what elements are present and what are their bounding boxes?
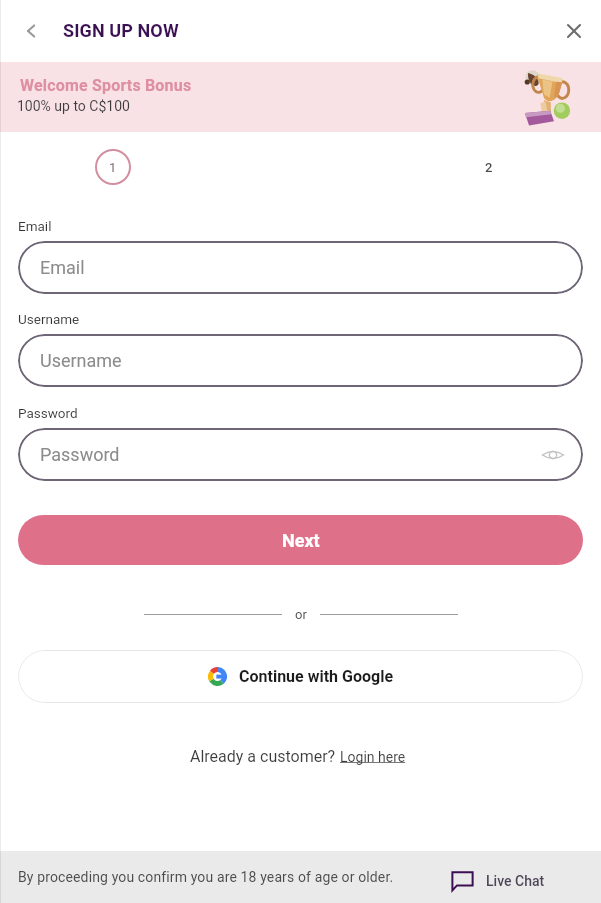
button[interactable]: 2 (471, 149, 507, 185)
button[interactable]: Back (13, 13, 49, 49)
staticText: Password (18, 405, 78, 421)
staticText: Next (282, 530, 320, 551)
staticText: Welcome Sports Bonus (20, 76, 192, 95)
staticText: Password (40, 444, 120, 465)
button[interactable]: Continue with Google (18, 650, 583, 703)
staticText: Email (18, 218, 52, 234)
button[interactable]: Username (18, 334, 583, 387)
button[interactable]: Live Chat (451, 871, 545, 891)
staticText: 100% up to C$100 (17, 98, 130, 114)
button[interactable]: 1 (95, 149, 131, 185)
button[interactable]: Next (18, 515, 583, 565)
staticText: Continue with Google (239, 667, 394, 686)
staticText: Username (40, 350, 122, 371)
staticText: or (295, 607, 307, 622)
staticText: Already a customer? (190, 747, 340, 766)
button[interactable]: Email (18, 241, 583, 294)
staticText: 2 (485, 160, 493, 175)
staticText: Username (18, 311, 80, 327)
button[interactable]: Close (556, 13, 592, 49)
staticText: Live Chat (486, 873, 545, 889)
button[interactable]: Login here (340, 750, 406, 766)
button[interactable]: Show password (540, 442, 566, 468)
button[interactable]: Password (18, 428, 583, 481)
staticText: By proceeding you confirm you are 18 yea… (18, 869, 394, 885)
staticText: SIGN UP NOW (63, 20, 179, 41)
staticText: Email (40, 257, 85, 278)
staticText: 1 (109, 160, 117, 175)
